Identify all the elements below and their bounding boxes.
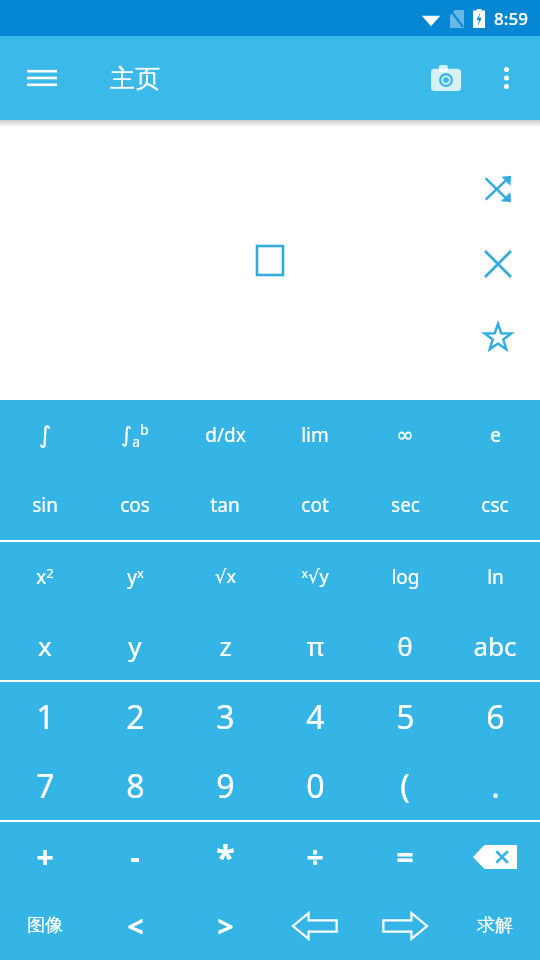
staticText: - <box>130 836 140 877</box>
button[interactable]: 1 <box>0 682 90 751</box>
button[interactable]: 5 <box>360 682 450 751</box>
staticText: 5 <box>396 695 415 739</box>
staticText: x <box>38 628 52 663</box>
button[interactable]: tan <box>180 470 270 540</box>
staticText: cot <box>301 492 329 518</box>
button[interactable]: ∫ab <box>90 400 180 470</box>
button[interactable]: π <box>270 611 360 680</box>
button[interactable]: x√y <box>270 542 360 611</box>
button[interactable]: Menu <box>14 50 70 106</box>
button[interactable]: lim <box>270 400 360 470</box>
button[interactable]: Clear <box>474 240 522 288</box>
button[interactable]: * <box>180 822 270 891</box>
staticText: cos <box>120 492 150 518</box>
button[interactable]: ∫ <box>0 400 90 470</box>
staticText: 4 <box>306 695 325 739</box>
staticText: tan <box>210 492 240 518</box>
button[interactable]: - <box>90 822 180 891</box>
staticText: lim <box>301 422 329 448</box>
staticText: sec <box>391 492 420 518</box>
staticText: * <box>216 834 235 880</box>
staticText: 求解 <box>477 914 513 937</box>
staticText: 8:59 <box>494 7 528 30</box>
button[interactable]: x <box>0 611 90 680</box>
staticText: ÷ <box>306 836 324 877</box>
staticText: 主页 <box>110 63 160 94</box>
staticText: sin <box>32 492 58 518</box>
button[interactable]: Shuffle <box>474 165 522 213</box>
button[interactable]: 求解 <box>450 891 540 960</box>
staticText: 8 <box>126 764 145 808</box>
staticText: 7 <box>36 764 55 808</box>
staticText: 0 <box>306 764 325 808</box>
button[interactable]: 9 <box>180 751 270 820</box>
button[interactable]: θ <box>360 611 450 680</box>
staticText: = <box>396 836 414 877</box>
button[interactable]: ∞ <box>360 400 450 470</box>
staticText: ln <box>487 564 504 590</box>
button[interactable]: 7 <box>0 751 90 820</box>
button[interactable]: csc <box>450 470 540 540</box>
staticText: d/dx <box>205 422 246 448</box>
button[interactable]: . <box>450 751 540 820</box>
staticText: y <box>128 628 142 663</box>
staticText: 3 <box>216 695 235 739</box>
button[interactable]: log <box>360 542 450 611</box>
button[interactable]: Move cursor left <box>270 891 360 960</box>
staticText: ∫ <box>39 422 51 449</box>
button[interactable]: > <box>180 891 270 960</box>
button[interactable]: e <box>450 400 540 470</box>
staticText: csc <box>481 492 509 518</box>
button[interactable]: ( <box>360 751 450 820</box>
button[interactable]: cot <box>270 470 360 540</box>
button[interactable]: 8 <box>90 751 180 820</box>
button[interactable]: < <box>90 891 180 960</box>
button[interactable]: = <box>360 822 450 891</box>
button[interactable]: 图像 <box>0 891 90 960</box>
staticText: e <box>490 422 501 448</box>
staticText: √x <box>215 564 236 589</box>
button[interactable]: + <box>0 822 90 891</box>
staticText: abc <box>473 628 517 663</box>
button[interactable]: sin <box>0 470 90 540</box>
staticText: π <box>307 628 324 663</box>
staticText: z <box>219 628 232 663</box>
button[interactable]: yx <box>90 542 180 611</box>
button[interactable]: Move cursor right <box>360 891 450 960</box>
button[interactable]: z <box>180 611 270 680</box>
button[interactable]: x2 <box>0 542 90 611</box>
staticText: ∫ab <box>121 420 149 451</box>
button[interactable]: ÷ <box>270 822 360 891</box>
staticText: yx <box>127 564 144 590</box>
staticText: ∞ <box>396 423 414 447</box>
button[interactable]: 4 <box>270 682 360 751</box>
staticText: . <box>491 764 500 808</box>
button[interactable]: sec <box>360 470 450 540</box>
button[interactable]: y <box>90 611 180 680</box>
button[interactable]: Favorite <box>474 313 522 361</box>
button[interactable]: d/dx <box>180 400 270 470</box>
staticText: θ <box>397 628 413 663</box>
button[interactable]: More options <box>480 52 532 104</box>
staticText: 2 <box>126 695 145 739</box>
staticText: log <box>391 564 420 590</box>
button[interactable]: 6 <box>450 682 540 751</box>
button[interactable]: 3 <box>180 682 270 751</box>
button[interactable]: √x <box>180 542 270 611</box>
button[interactable]: abc <box>450 611 540 680</box>
staticText: 6 <box>486 695 505 739</box>
staticText: ( <box>400 764 410 808</box>
staticText: 9 <box>216 764 235 808</box>
button[interactable]: 2 <box>90 682 180 751</box>
staticText: 1 <box>36 695 55 739</box>
staticText: < <box>127 907 144 945</box>
staticText: 图像 <box>27 914 63 937</box>
staticText: x√y <box>301 564 329 589</box>
button[interactable]: 0 <box>270 751 360 820</box>
staticText: + <box>36 836 54 877</box>
button[interactable]: cos <box>90 470 180 540</box>
staticText: x2 <box>36 564 54 590</box>
button[interactable]: ln <box>450 542 540 611</box>
button[interactable]: Camera <box>420 52 472 104</box>
button[interactable]: Backspace <box>450 822 540 891</box>
